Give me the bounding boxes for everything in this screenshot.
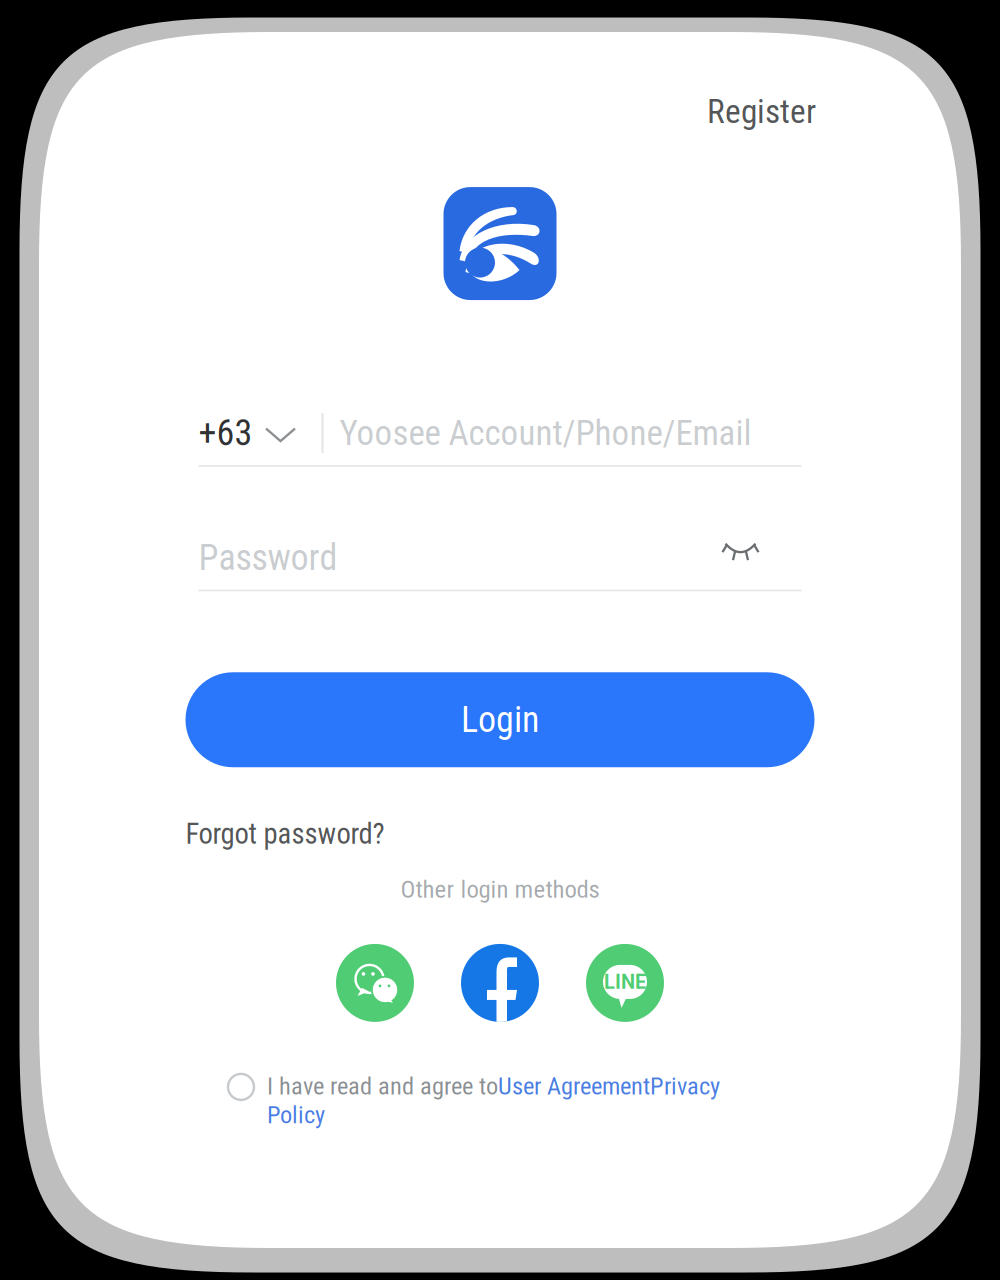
- staticText: Forgot password?: [185, 817, 384, 851]
- button[interactable]: Show password: [721, 539, 801, 577]
- button[interactable]: Forgot password?: [185, 817, 384, 851]
- staticText: Register: [707, 92, 816, 131]
- button[interactable]: +63: [198, 412, 296, 454]
- button[interactable]: Login: [185, 672, 814, 767]
- button[interactable]: Sign in with LINE: [586, 944, 664, 1022]
- staticText: LINE: [604, 970, 646, 994]
- button[interactable]: I have read and agree toUser AgreementPr…: [254, 1072, 737, 1129]
- staticText: Yoosee Account/Phone/Email: [339, 412, 751, 454]
- staticText: Login: [461, 699, 539, 741]
- button[interactable]: Register: [689, 82, 834, 141]
- staticText: +63: [198, 412, 252, 454]
- button[interactable]: Agree to the user agreement: [228, 1074, 254, 1100]
- button[interactable]: Sign in with Facebook: [461, 944, 539, 1022]
- staticText: I have read and agree toUser AgreementPr…: [267, 1072, 720, 1129]
- staticText: Other login methods: [400, 875, 599, 904]
- button[interactable]: Sign in with WeChat: [336, 944, 414, 1022]
- staticText: Password: [198, 537, 337, 579]
